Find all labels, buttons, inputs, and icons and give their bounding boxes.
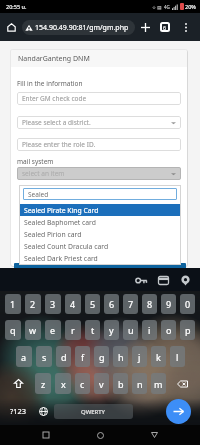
staticText: q bbox=[10, 324, 16, 336]
button[interactable]: b bbox=[113, 373, 128, 394]
button[interactable]: Recent apps bbox=[38, 427, 54, 443]
button[interactable]: j bbox=[132, 346, 147, 367]
button[interactable]: x bbox=[55, 373, 71, 394]
staticText: a bbox=[21, 351, 27, 363]
staticText: n bbox=[137, 378, 143, 390]
button[interactable]: Back bbox=[146, 427, 162, 443]
button[interactable]: i bbox=[142, 320, 157, 340]
button[interactable]: Payment methods bbox=[152, 269, 174, 291]
button[interactable]: ?123 bbox=[3, 397, 34, 425]
staticText: 154.90.49.90:81/gm/gm.php bbox=[35, 23, 129, 33]
button[interactable]: Sealed Baphomet card bbox=[24, 216, 181, 228]
button[interactable]: 6 bbox=[104, 294, 119, 314]
staticText: 20% bbox=[185, 3, 196, 10]
button[interactable]: n bbox=[132, 373, 147, 394]
button[interactable]: o bbox=[161, 320, 176, 340]
button[interactable]: k bbox=[151, 346, 166, 367]
button[interactable]: Backspace bbox=[168, 370, 197, 397]
staticText: k bbox=[156, 351, 161, 363]
button[interactable]: v bbox=[94, 373, 109, 394]
staticText: 0 bbox=[185, 298, 191, 310]
staticText: g bbox=[99, 351, 105, 363]
staticText: ☆ ▤ bbox=[152, 4, 162, 10]
staticText: y bbox=[109, 324, 114, 336]
button[interactable]: 8 bbox=[142, 294, 157, 314]
button[interactable]: z bbox=[35, 373, 51, 394]
button[interactable]: Change keyboard language bbox=[34, 397, 53, 425]
button[interactable]: f bbox=[75, 346, 90, 367]
button[interactable]: 1 bbox=[5, 294, 21, 314]
button[interactable]: Sealed Count Dracula card bbox=[24, 240, 181, 252]
button[interactable]: Home bbox=[92, 427, 108, 443]
staticText: i bbox=[148, 324, 151, 336]
staticText: t bbox=[91, 324, 95, 336]
button[interactable]: Sealed Pirion card bbox=[24, 228, 181, 240]
button[interactable]: Shift bbox=[3, 370, 33, 397]
button[interactable]: e bbox=[45, 320, 61, 340]
button[interactable]: y bbox=[104, 320, 119, 340]
button[interactable]: w bbox=[25, 320, 41, 340]
button[interactable]: p bbox=[180, 320, 195, 340]
staticText: 9 bbox=[166, 298, 172, 310]
button[interactable]: Sealed Pirate King Card bbox=[24, 204, 181, 216]
staticText: s bbox=[42, 351, 47, 363]
button[interactable]: 5 bbox=[85, 294, 100, 314]
button[interactable]: d bbox=[56, 346, 71, 367]
button[interactable]: Enter GM check code bbox=[22, 92, 176, 105]
staticText: p bbox=[185, 324, 191, 336]
button[interactable]: t bbox=[85, 320, 100, 340]
button[interactable]: select an item bbox=[22, 167, 176, 180]
staticText: 4 bbox=[70, 298, 76, 310]
staticText: Sealed bbox=[28, 190, 49, 199]
button[interactable]: c bbox=[75, 373, 90, 394]
staticText: e bbox=[50, 324, 56, 336]
staticText: x bbox=[61, 378, 66, 390]
button[interactable]: New tab bbox=[137, 19, 153, 35]
button[interactable]: 154.90.49.90:81/gm/gm.php bbox=[25, 20, 131, 35]
staticText: mail system bbox=[17, 157, 54, 166]
staticText: 5 bbox=[90, 298, 96, 310]
button[interactable]: Sealed Dark Priest card bbox=[24, 252, 181, 264]
button[interactable]: 0 bbox=[180, 294, 195, 314]
staticText: Sealed Baphomet card bbox=[24, 218, 96, 227]
staticText: 2 bbox=[30, 298, 36, 310]
staticText: ?123 bbox=[10, 406, 27, 416]
button[interactable]: Sealed bbox=[28, 188, 172, 200]
button[interactable]: r bbox=[65, 320, 81, 340]
button[interactable]: l bbox=[170, 346, 185, 367]
button[interactable]: 9 bbox=[161, 294, 176, 314]
button[interactable]: Home bbox=[3, 19, 19, 35]
button[interactable]: Please select a district. bbox=[22, 116, 176, 129]
staticText: Enter GM check code bbox=[22, 94, 87, 103]
button[interactable]: g bbox=[94, 346, 109, 367]
staticText: Sealed Pirion card bbox=[24, 230, 82, 239]
button[interactable]: Addresses bbox=[174, 269, 196, 291]
staticText: l bbox=[176, 351, 179, 363]
button[interactable]: s bbox=[36, 346, 52, 367]
button[interactable]: h bbox=[113, 346, 128, 367]
button[interactable]: q bbox=[5, 320, 21, 340]
staticText: u bbox=[128, 324, 134, 336]
button[interactable]: Please enter the role ID. bbox=[22, 138, 176, 151]
staticText: r bbox=[71, 324, 75, 336]
button[interactable]: Switch tabs bbox=[157, 19, 173, 35]
staticText: 7 bbox=[128, 298, 134, 310]
button[interactable]: QWERTY bbox=[54, 404, 133, 419]
button[interactable]: Enter bbox=[159, 397, 197, 425]
button[interactable]: m bbox=[151, 373, 166, 394]
button[interactable]: u bbox=[123, 320, 138, 340]
button[interactable]: 2 bbox=[25, 294, 41, 314]
staticText: 1 bbox=[10, 298, 16, 310]
button[interactable] bbox=[14, 263, 186, 269]
button[interactable]: More options bbox=[179, 20, 193, 34]
staticText: select an item bbox=[22, 169, 65, 178]
button[interactable]: 7 bbox=[123, 294, 138, 314]
staticText: b bbox=[118, 378, 124, 390]
button[interactable]: Passwords bbox=[130, 269, 152, 291]
staticText: Sealed Count Dracula card bbox=[24, 242, 109, 251]
staticText: v bbox=[99, 378, 104, 390]
staticText: w bbox=[29, 324, 37, 336]
button[interactable]: a bbox=[16, 346, 32, 367]
button[interactable]: 3 bbox=[45, 294, 61, 314]
button[interactable]: 4 bbox=[65, 294, 81, 314]
